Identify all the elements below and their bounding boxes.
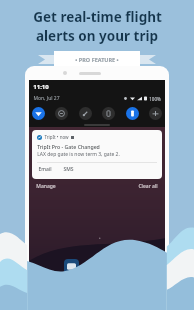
button[interactable]: Auto rotate	[126, 107, 139, 120]
staticText: LAX dep gate is now term 3, gate 2.	[37, 151, 120, 158]
staticText: Email	[38, 166, 52, 173]
staticText: 11:10	[33, 83, 49, 91]
staticText: Get real-time flight	[33, 8, 162, 26]
staticText: TripIt • now	[44, 134, 69, 140]
button[interactable]: Messages	[64, 259, 79, 274]
button[interactable]: Wi-Fi	[32, 107, 45, 120]
staticText: TripIt Pro - Gate Changed	[37, 143, 100, 150]
button[interactable]: Battery saver	[102, 107, 115, 120]
staticText: Manage	[36, 183, 56, 190]
button[interactable]: Manage	[36, 183, 56, 190]
button[interactable]: Airplane mode	[149, 107, 162, 120]
staticText: alerts on your trip	[36, 27, 158, 45]
staticText: • PRO FEATURE •	[75, 56, 119, 63]
button[interactable]: Do not disturb	[55, 107, 68, 120]
staticText: SMS	[63, 166, 74, 173]
staticText: 100%	[149, 96, 161, 102]
button[interactable]: Email	[37, 166, 53, 173]
button[interactable]: TripIt • now	[32, 130, 162, 179]
staticText: Clear all	[138, 183, 158, 190]
button[interactable]: SMS	[62, 166, 75, 173]
staticText: Mon, Jul 27	[33, 95, 60, 102]
button[interactable]: Flashlight	[79, 107, 92, 120]
button[interactable]: Clear all	[138, 183, 158, 190]
